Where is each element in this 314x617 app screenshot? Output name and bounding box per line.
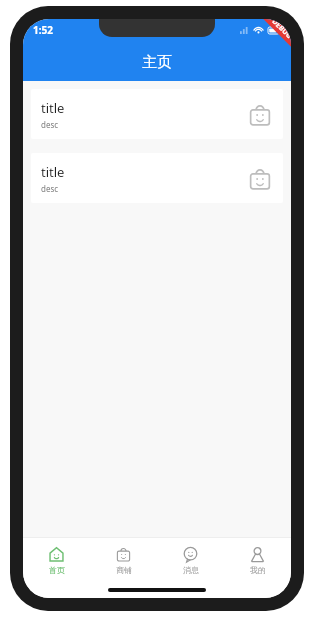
staticText: desc (41, 183, 59, 194)
button[interactable]: title (31, 89, 283, 139)
other: Profile (249, 546, 266, 563)
button[interactable]: Home (23, 542, 90, 579)
staticText: 主页 (142, 53, 172, 72)
other: Shop (115, 546, 132, 563)
staticText: 首页 (49, 565, 65, 575)
button[interactable]: Shop (90, 542, 157, 579)
other: Home (48, 546, 65, 563)
staticText: 消息 (183, 565, 199, 575)
button[interactable]: title (31, 153, 283, 203)
staticText: 我的 (250, 565, 266, 575)
other: Shop (247, 166, 273, 192)
staticText: DEBUG (270, 19, 291, 42)
other: Shop (247, 102, 273, 128)
button[interactable]: Profile (224, 542, 291, 579)
staticText: 商铺 (116, 565, 132, 575)
staticText: desc (41, 119, 59, 130)
staticText: 1:52 (33, 23, 53, 37)
button[interactable]: Messages (157, 542, 224, 579)
other: Messages (182, 546, 199, 563)
staticText: title (41, 99, 65, 117)
staticText: title (41, 163, 65, 181)
